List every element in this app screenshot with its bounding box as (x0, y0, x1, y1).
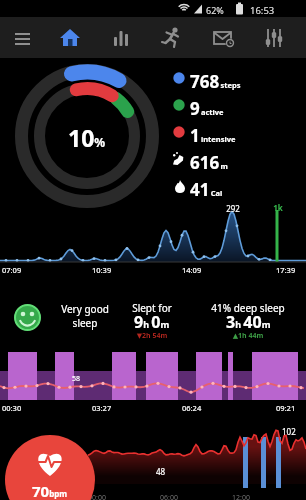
staticText: ▲1h 44m (198, 331, 298, 341)
staticText: 58 (72, 374, 81, 384)
staticText: 03:27 (92, 403, 112, 413)
staticText: 10% (68, 122, 106, 150)
staticText: 09:21 (276, 403, 296, 413)
staticText: 102 (282, 426, 296, 437)
staticText: 06:24 (182, 403, 202, 413)
staticText: 616 m (190, 151, 228, 174)
staticText: 3h 40m (226, 311, 271, 333)
staticText: 12:00 (232, 493, 250, 500)
staticText: 1 intensive (190, 124, 236, 147)
button[interactable] (99, 18, 143, 58)
button[interactable] (48, 18, 92, 58)
button[interactable] (252, 18, 296, 58)
staticText: Very good sleep (48, 302, 122, 330)
staticText: 16:53 (250, 4, 275, 17)
staticText: 9 active (190, 97, 224, 120)
staticText: 06:00 (160, 493, 178, 500)
staticText: ▼2h 54m (122, 331, 182, 341)
staticText: 1k (270, 202, 286, 213)
staticText: 62% (206, 4, 224, 16)
staticText: 9h 0m (134, 311, 170, 333)
staticText: 07:09 (2, 265, 22, 275)
staticText: 10:39 (92, 265, 112, 275)
staticText: 41% deep sleep (198, 301, 298, 315)
staticText: 00:00 (88, 493, 106, 500)
staticText: 14:09 (182, 265, 202, 275)
staticText: 292 (222, 203, 244, 214)
staticText: 17:39 (276, 265, 296, 275)
staticText: 48 (156, 466, 166, 477)
button[interactable] (0, 18, 44, 58)
button[interactable]: 70bpm (5, 435, 95, 500)
staticText: Slept for (122, 301, 182, 315)
staticText: 00:30 (2, 403, 22, 413)
staticText: 768 steps (190, 70, 241, 93)
staticText: 70bpm (32, 481, 68, 500)
staticText: 41 Cal (190, 178, 223, 201)
button[interactable] (150, 18, 194, 58)
button[interactable] (201, 18, 245, 58)
